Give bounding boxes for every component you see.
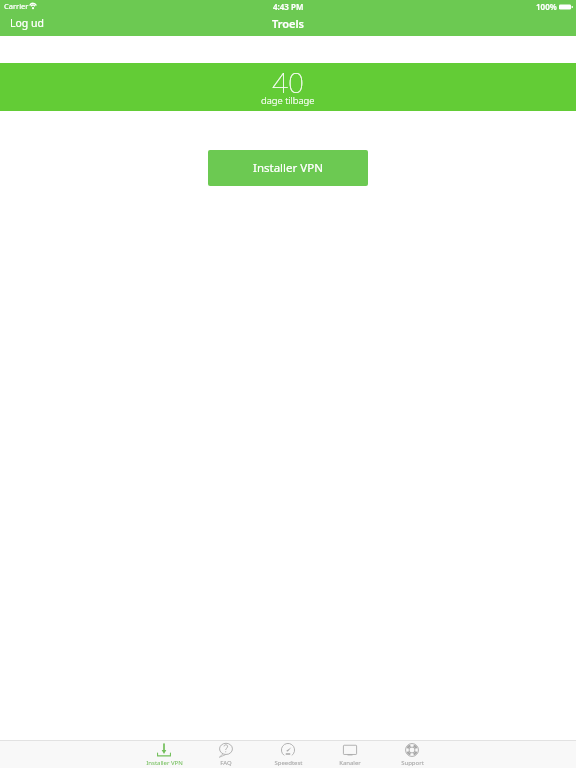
other: Battery full (559, 4, 573, 10)
button[interactable]: Speedtest (257, 740, 319, 768)
staticText: 40 (272, 63, 304, 101)
staticText: Carrier (4, 1, 29, 11)
button[interactable]: Log ud (0, 11, 54, 34)
other: Wi-Fi (29, 3, 37, 9)
staticText: 100% (536, 1, 557, 12)
button[interactable]: Installer VPN (133, 740, 195, 768)
staticText: Installer VPN (146, 759, 183, 767)
staticText: Support (401, 759, 424, 767)
staticText: FAQ (220, 759, 232, 767)
staticText: Installer VPN (253, 160, 323, 176)
button[interactable]: Installer VPN (208, 150, 368, 186)
button[interactable]: Support (381, 740, 443, 768)
button[interactable]: Kanaler (319, 740, 381, 768)
staticText: Log ud (10, 16, 44, 30)
staticText: dage tilbage (261, 94, 315, 107)
staticText: Kanaler (339, 759, 361, 767)
staticText: Speedtest (274, 759, 303, 767)
button[interactable]: FAQ (195, 740, 257, 768)
staticText: 4:43 PM (273, 1, 304, 12)
staticText: Troels (272, 16, 305, 31)
